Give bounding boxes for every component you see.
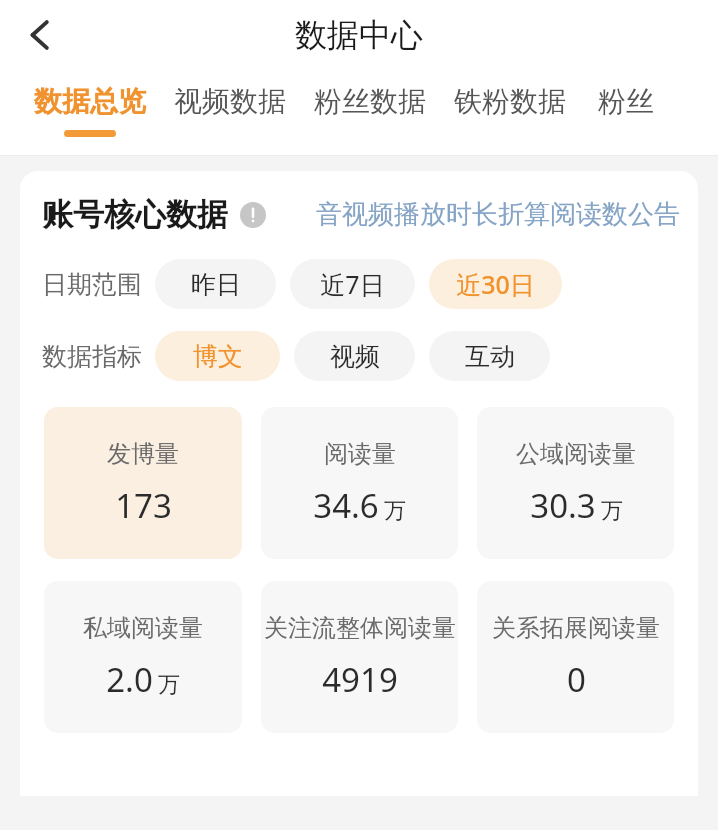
staticText: 0 xyxy=(567,657,586,702)
staticText: 关系拓展阅读量 xyxy=(492,613,660,643)
button[interactable]: 粉丝数据 xyxy=(300,70,440,130)
button[interactable]: 公域阅读量 xyxy=(477,407,674,559)
staticText: 阅读量 xyxy=(324,439,396,469)
staticText: 粉丝 xyxy=(598,84,654,119)
staticText: 4919 xyxy=(322,657,398,702)
button[interactable]: 昨日 xyxy=(155,259,276,309)
button[interactable]: Back xyxy=(8,3,72,67)
staticText: 铁粉数据 xyxy=(454,84,566,119)
staticText: 昨日 xyxy=(191,269,241,300)
staticText: 公域阅读量 xyxy=(516,439,636,469)
button[interactable]: 视频数据 xyxy=(160,70,300,130)
button[interactable]: 音视频播放时长折算阅读数公告 xyxy=(268,198,680,231)
staticText: 博文 xyxy=(193,341,243,372)
staticText: 粉丝数据 xyxy=(314,84,426,119)
button[interactable]: 私域阅读量 xyxy=(44,581,242,733)
button[interactable]: 博文 xyxy=(155,331,280,381)
staticText: 近30日 xyxy=(456,267,535,301)
button[interactable]: 发博量 xyxy=(44,407,242,559)
staticText: 互动 xyxy=(465,341,515,372)
staticText: 私域阅读量 xyxy=(83,613,203,643)
button[interactable]: 关系拓展阅读量 xyxy=(477,581,674,733)
staticText: 近7日 xyxy=(320,267,385,301)
staticText: 视频数据 xyxy=(174,84,286,119)
button[interactable]: 近30日 xyxy=(429,259,562,309)
button[interactable]: 关注流整体阅读量 xyxy=(261,581,458,733)
button[interactable]: 阅读量 xyxy=(261,407,458,559)
staticText: 视频 xyxy=(330,341,380,372)
staticText: 数据中心 xyxy=(295,15,423,55)
staticText: 万 xyxy=(384,497,406,525)
staticText: 日期范围 xyxy=(42,269,142,300)
button[interactable]: 互动 xyxy=(429,331,550,381)
staticText: 万 xyxy=(158,671,180,699)
staticText: 30.3 xyxy=(530,483,596,528)
staticText: 音视频播放时长折算阅读数公告 xyxy=(316,198,680,231)
button[interactable]: 粉丝 xyxy=(584,70,668,130)
staticText: 账号核心数据 xyxy=(42,195,228,234)
button[interactable]: 近7日 xyxy=(290,259,415,309)
button[interactable]: 铁粉数据 xyxy=(440,70,580,130)
button[interactable]: 视频 xyxy=(294,331,415,381)
button[interactable]: 说明 xyxy=(239,201,267,229)
staticText: 173 xyxy=(115,483,172,528)
staticText: 数据指标 xyxy=(42,341,142,372)
staticText: 34.6 xyxy=(313,483,379,528)
staticText: 数据总览 xyxy=(34,84,146,119)
staticText: 万 xyxy=(601,497,623,525)
staticText: 2.0 xyxy=(106,657,153,702)
staticText: 关注流整体阅读量 xyxy=(264,613,456,643)
staticText: 发博量 xyxy=(107,439,179,469)
button[interactable]: 数据总览 xyxy=(20,70,160,137)
